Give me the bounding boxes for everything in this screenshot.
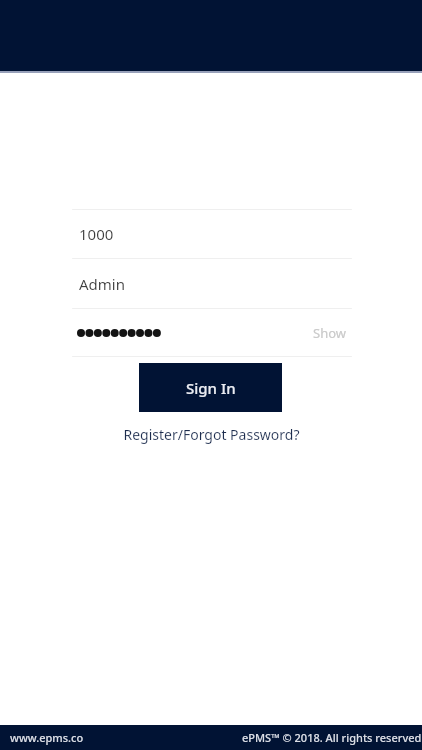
staticText: ePMS™ © 2018. All rights reserved [242, 730, 422, 745]
staticText: Register/Forgot Password? [123, 425, 300, 444]
staticText: 1000 [79, 224, 114, 244]
button[interactable]: Sign In [139, 363, 282, 412]
other: Password [77, 328, 163, 338]
button[interactable]: www.epms.co [0, 727, 90, 748]
button[interactable]: 1000 [72, 210, 352, 258]
button[interactable]: Password [72, 309, 352, 356]
staticText: Admin [79, 274, 125, 294]
button[interactable]: Register/Forgot Password? [113, 421, 310, 448]
staticText: Sign In [186, 378, 236, 398]
button[interactable]: Admin [72, 259, 352, 308]
staticText: Show [313, 324, 346, 342]
staticText: www.epms.co [10, 730, 84, 745]
button[interactable]: Show password [307, 316, 352, 350]
